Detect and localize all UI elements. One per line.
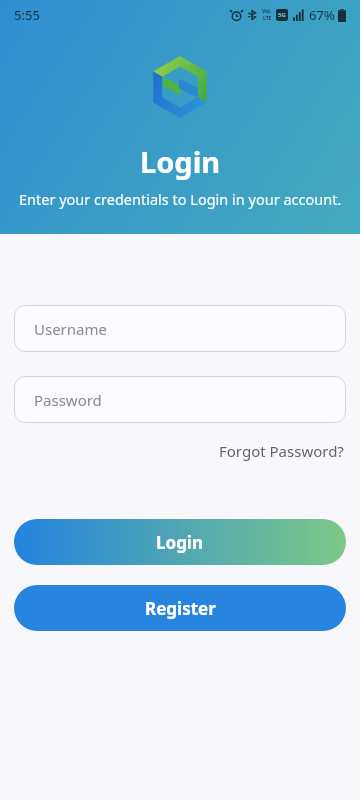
staticText: Username (34, 319, 107, 339)
button[interactable]: Login (14, 519, 346, 565)
staticText: LTE (263, 15, 272, 22)
button[interactable]: Forgot Password? (217, 437, 346, 465)
button[interactable]: Username (14, 305, 346, 352)
staticText: Password (34, 390, 102, 410)
staticText: Enter your credentials to Login in your … (19, 189, 342, 209)
staticText: 67% (309, 6, 335, 24)
button[interactable]: Register (14, 585, 346, 631)
staticText: Register (145, 597, 216, 620)
staticText: Forgot Password? (219, 441, 344, 461)
staticText: VoL (262, 8, 272, 15)
staticText: Login (140, 142, 221, 181)
staticText: Login (156, 531, 204, 554)
staticText: 5G (278, 11, 286, 19)
staticText: 5:55 (14, 6, 40, 24)
button[interactable]: Password (14, 376, 346, 423)
